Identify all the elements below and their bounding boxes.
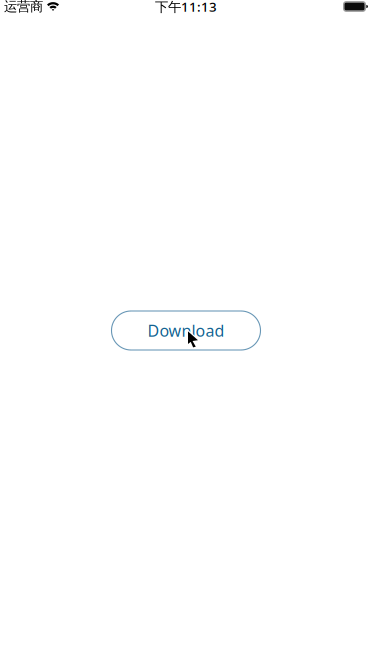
- staticText: 运营商: [4, 0, 43, 15]
- staticText: 下午11:13: [155, 0, 217, 15]
- button[interactable]: Download: [111, 311, 260, 350]
- staticText: Download: [147, 320, 224, 341]
